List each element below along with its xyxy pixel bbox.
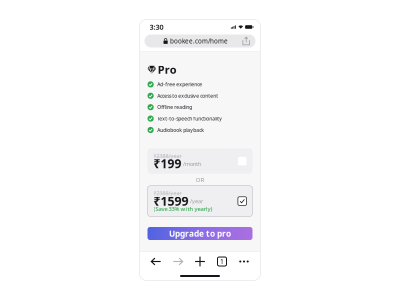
staticText: ₹2388/year (153, 152, 181, 160)
staticText: 1 (220, 257, 224, 266)
staticText: OR (195, 175, 204, 184)
button[interactable]: Share (242, 36, 250, 46)
button[interactable]: More (238, 256, 249, 267)
staticText: ₹2388/year (153, 190, 181, 197)
staticText: bookee.com/home (170, 37, 228, 45)
button[interactable]: Back (150, 256, 161, 267)
button[interactable]: Upgrade to pro (147, 227, 252, 240)
staticText: Ad-free experience (157, 81, 202, 88)
staticText: Access to exclusive content (157, 92, 218, 99)
button[interactable]: New Tab (194, 256, 205, 267)
staticText: ₹1599 (153, 192, 188, 209)
button[interactable]: Tabs (216, 256, 227, 267)
staticText: Pro (158, 62, 177, 77)
staticText: (Save 33% with yearly) (153, 205, 212, 213)
staticText: Audiobook playback (157, 127, 204, 133)
staticText: Text-to-speech functionality (157, 115, 222, 122)
staticText: Offline reading (157, 104, 192, 110)
staticText: Upgrade to pro (169, 228, 231, 239)
staticText: ₹199 (153, 155, 181, 172)
staticText: /month (183, 160, 201, 168)
button[interactable]: Forward (172, 256, 183, 267)
button[interactable]: ₹2388/year (147, 186, 252, 216)
staticText: 3:30 (149, 22, 163, 32)
button[interactable]: ₹2388/year (147, 148, 252, 174)
staticText: /year (190, 197, 203, 205)
